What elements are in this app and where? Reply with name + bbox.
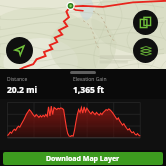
staticText: 20.2 mi	[7, 84, 38, 96]
staticText: Download Map Layer	[46, 154, 120, 164]
button[interactable]: Map layers	[133, 38, 158, 63]
staticText: Distance	[7, 76, 28, 83]
button[interactable]: Download Map Layer	[3, 152, 163, 165]
staticText: 1,365 ft	[73, 84, 105, 96]
button[interactable]: 3D view	[133, 10, 158, 35]
button[interactable]: Locate me	[6, 37, 33, 64]
staticText: Elevation Gain	[73, 76, 107, 83]
